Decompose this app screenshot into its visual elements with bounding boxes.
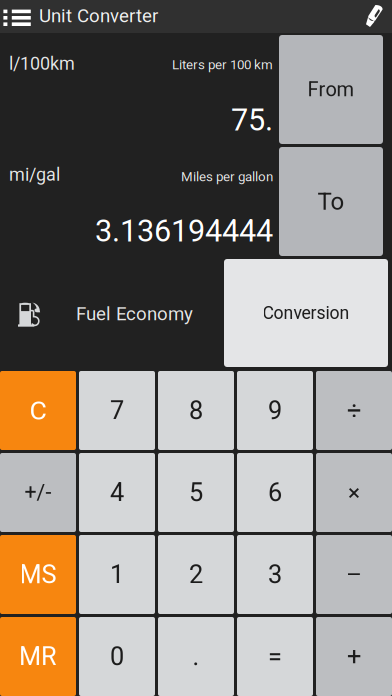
staticText: 5 — [189, 478, 203, 507]
staticText: 75. — [231, 102, 273, 138]
staticText: MS — [19, 560, 56, 589]
staticText: MR — [19, 642, 57, 671]
staticText: Conversion — [262, 303, 349, 323]
button[interactable]: + — [316, 617, 392, 696]
button[interactable]: 6 — [237, 453, 313, 532]
staticText: From — [307, 78, 354, 101]
staticText: C — [29, 395, 46, 426]
staticText: × — [348, 479, 360, 506]
staticText: + — [347, 642, 361, 671]
staticText: 2 — [189, 560, 203, 589]
staticText: mi/gal — [9, 164, 60, 185]
staticText: 0 — [110, 642, 124, 671]
button[interactable]: From — [279, 35, 383, 144]
staticText: ÷ — [347, 396, 361, 425]
button[interactable]: +/- — [0, 453, 76, 532]
button[interactable]: 3 — [237, 535, 313, 614]
button[interactable]: 0 — [79, 617, 155, 696]
staticText: – — [345, 560, 362, 589]
staticText: l/100km — [9, 53, 75, 74]
staticText: 1 — [110, 560, 124, 589]
button[interactable]: 5 — [158, 453, 234, 532]
staticText: Fuel Economy — [76, 303, 193, 325]
button[interactable]: MR — [0, 617, 76, 696]
staticText: 3 — [268, 560, 282, 589]
button[interactable]: 7 — [79, 371, 155, 450]
button[interactable]: 4 — [79, 453, 155, 532]
button[interactable]: – — [316, 535, 392, 614]
button[interactable]: × — [316, 453, 392, 532]
staticText: To — [317, 187, 344, 215]
button[interactable]: = — [237, 617, 313, 696]
staticText: 6 — [268, 478, 282, 507]
button[interactable]: 8 — [158, 371, 234, 450]
button[interactable]: C — [0, 371, 76, 450]
button[interactable]: . — [158, 617, 234, 696]
staticText: 3.136194444 — [95, 213, 273, 249]
staticText: 9 — [268, 396, 282, 425]
button[interactable]: 2 — [158, 535, 234, 614]
button[interactable]: 9 — [237, 371, 313, 450]
staticText: 8 — [189, 396, 203, 425]
staticText: 7 — [110, 396, 124, 425]
button[interactable]: ÷ — [316, 371, 392, 450]
staticText: 4 — [110, 478, 124, 507]
button[interactable]: Menu — [0, 0, 36, 33]
staticText: Liters per 100 km — [172, 57, 273, 73]
button[interactable]: MS — [0, 535, 76, 614]
staticText: Miles per gallon — [181, 169, 273, 185]
button[interactable]: Edit — [359, 0, 392, 33]
staticText: +/- — [24, 480, 51, 505]
button[interactable]: Conversion — [224, 259, 388, 367]
button[interactable]: To — [279, 147, 383, 256]
staticText: Unit Converter — [39, 5, 158, 27]
staticText: = — [268, 642, 282, 671]
button[interactable]: 1 — [79, 535, 155, 614]
staticText: . — [192, 642, 199, 671]
